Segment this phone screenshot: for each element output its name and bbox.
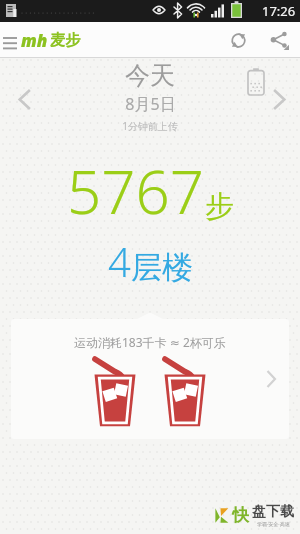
button[interactable]: Previous day bbox=[6, 80, 44, 118]
staticText: 1分钟前上传 bbox=[122, 119, 178, 133]
staticText: 5767 bbox=[67, 150, 205, 232]
staticText: 17:26 bbox=[262, 2, 296, 20]
staticText: 4 bbox=[108, 234, 131, 288]
button[interactable]: Share bbox=[258, 22, 300, 58]
staticText: 盘下载 bbox=[252, 503, 294, 521]
staticText: 8月5日 bbox=[125, 93, 176, 115]
staticText: 快 bbox=[232, 505, 249, 526]
staticText: 学霸·安全·高速 bbox=[257, 521, 290, 528]
button[interactable]: Next day bbox=[260, 80, 298, 118]
other: Device battery bbox=[248, 68, 264, 95]
staticText: 麦步 bbox=[50, 31, 80, 50]
staticText: 层楼 bbox=[131, 248, 193, 287]
button[interactable]: Refresh bbox=[218, 22, 258, 58]
button[interactable]: Menu bbox=[0, 29, 86, 52]
staticText: mh bbox=[21, 29, 48, 52]
button[interactable]: 运动消耗183千卡 ≈ 2杯可乐 bbox=[11, 319, 289, 439]
staticText: 运动消耗183千卡 ≈ 2杯可乐 bbox=[74, 334, 226, 350]
staticText: 今天 bbox=[125, 60, 175, 91]
staticText: 步 bbox=[205, 188, 234, 225]
